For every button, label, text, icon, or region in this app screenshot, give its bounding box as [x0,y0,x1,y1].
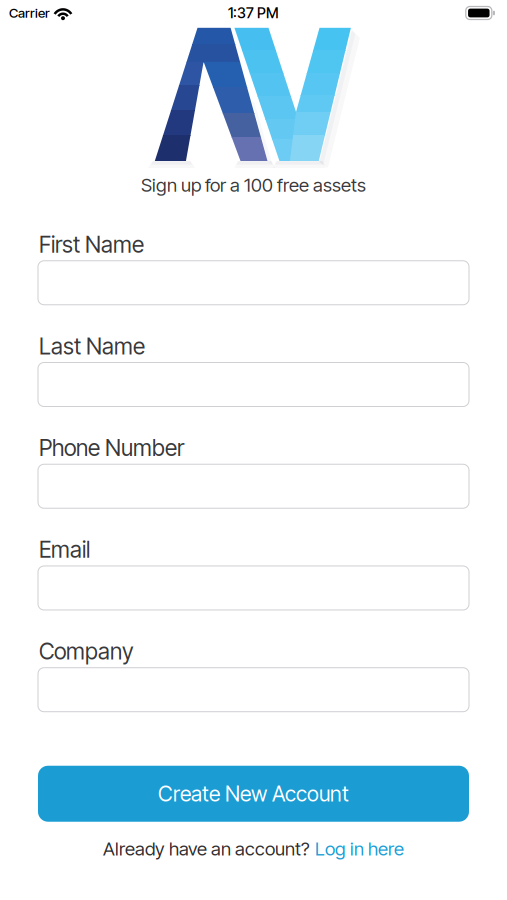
staticText: Email [39,536,90,563]
staticText: Already have an account? [103,838,310,860]
staticText: Company [39,638,134,665]
staticText: Create New Account [158,781,349,806]
staticText: Log in here [315,838,404,860]
staticText: Last Name [39,333,145,359]
staticText: Phone Number [39,434,184,461]
staticText: 1:37 PM [228,4,279,22]
staticText: Carrier [9,5,50,21]
button[interactable]: Log in here [315,838,404,860]
staticText: Sign up for a 100 free assets [141,174,366,196]
staticText: First Name [39,231,144,258]
button[interactable]: Create New Account [38,766,469,822]
